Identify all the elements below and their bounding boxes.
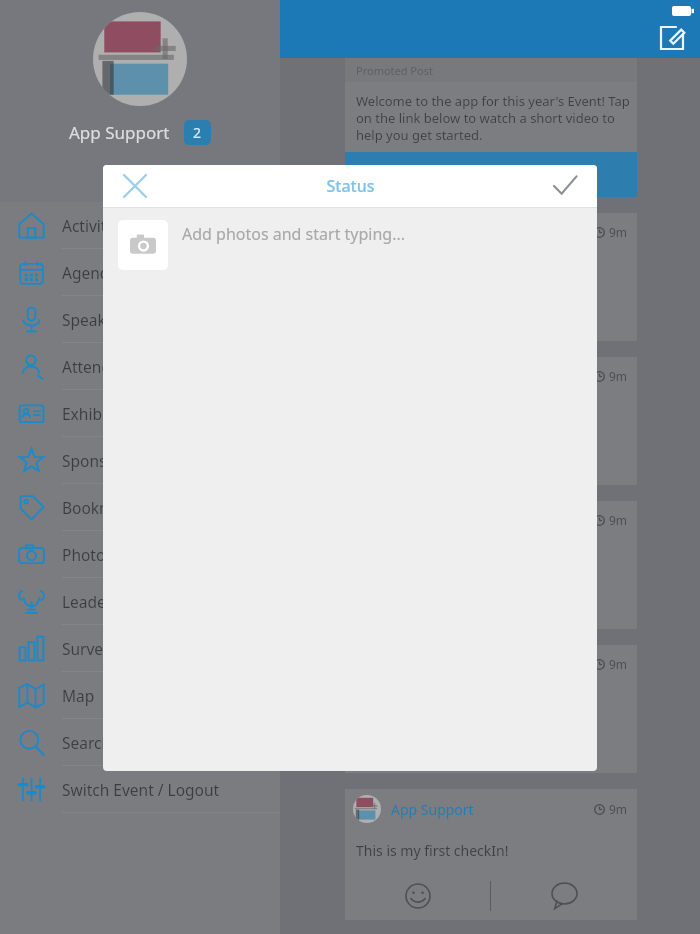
button[interactable]: Like (345, 871, 490, 920)
staticText: 9m (609, 512, 628, 528)
staticText: Exhibitors (62, 403, 135, 424)
button[interactable]: Photos (0, 531, 280, 577)
staticText: Sponsors (62, 450, 130, 471)
staticText: 9m (609, 801, 628, 817)
button[interactable]: Close (115, 166, 155, 206)
button[interactable]: Activity (0, 202, 280, 248)
staticText: Promoted Post (356, 63, 433, 78)
staticText: Speakers (62, 309, 129, 330)
button[interactable]: Agenda (0, 249, 280, 295)
staticText: Attendees (62, 356, 136, 377)
staticText: Photos (62, 544, 113, 565)
staticText: Search (62, 732, 112, 753)
button[interactable]: Surveys (0, 625, 280, 671)
button[interactable]: 2 (184, 120, 211, 145)
staticText: App Support (69, 121, 170, 144)
staticText: 9m (609, 224, 628, 240)
button[interactable]: Compose post (656, 22, 688, 54)
staticText: Welcome to the app for this year's Event… (356, 92, 630, 144)
staticText: App Support (391, 800, 474, 819)
staticText: Leaderboard (62, 591, 156, 612)
button[interactable]: App Support (345, 789, 637, 920)
staticText: 2 (193, 123, 202, 142)
button[interactable]: Search (0, 719, 280, 765)
staticText: Map (62, 685, 95, 706)
button[interactable]: Sponsors (0, 437, 280, 483)
staticText: Status (326, 175, 375, 197)
button[interactable]: Welcome to the app for this year's Event… (345, 83, 637, 151)
staticText: Surveys (62, 638, 119, 659)
button[interactable]: Post status (545, 166, 585, 206)
button[interactable]: Speakers (0, 296, 280, 342)
button[interactable]: 9m (345, 645, 637, 773)
button[interactable]: 9m (345, 501, 637, 629)
button[interactable]: 9m (345, 357, 637, 485)
button[interactable] (345, 152, 637, 197)
staticText: Switch Event / Logout (62, 779, 220, 800)
button[interactable]: 9m (345, 213, 637, 341)
button[interactable]: Bookmarks (0, 484, 280, 530)
button[interactable]: Switch Event / Logout (0, 766, 280, 812)
staticText: Add photos and start typing... (182, 223, 406, 245)
button[interactable]: Comment (491, 871, 637, 920)
staticText: This is my first checkIn! (356, 841, 509, 860)
staticText: 9m (609, 368, 628, 384)
staticText: 9m (609, 656, 628, 672)
staticText: Bookmarks (62, 497, 145, 518)
button[interactable]: Leaderboard (0, 578, 280, 624)
button[interactable]: Map (0, 672, 280, 718)
staticText: Activity (62, 215, 115, 236)
button[interactable]: Exhibitors (0, 390, 280, 436)
staticText: Agenda (62, 262, 118, 283)
button[interactable]: Attendees (0, 343, 280, 389)
button[interactable]: Add photo (118, 220, 168, 270)
